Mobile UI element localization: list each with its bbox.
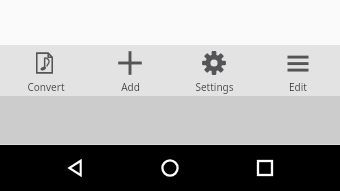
button[interactable]: Edit [256, 45, 340, 96]
button[interactable]: Back [29, 145, 123, 191]
staticText: Add [121, 80, 140, 94]
button[interactable]: Recent apps [217, 145, 311, 191]
button[interactable]: Convert [3, 45, 88, 96]
staticText: Edit [289, 80, 307, 94]
button[interactable]: Home [123, 145, 217, 191]
staticText: Convert [27, 80, 65, 94]
staticText: Settings [195, 80, 234, 94]
button[interactable]: Settings [172, 45, 256, 96]
button[interactable]: Add [88, 45, 172, 96]
